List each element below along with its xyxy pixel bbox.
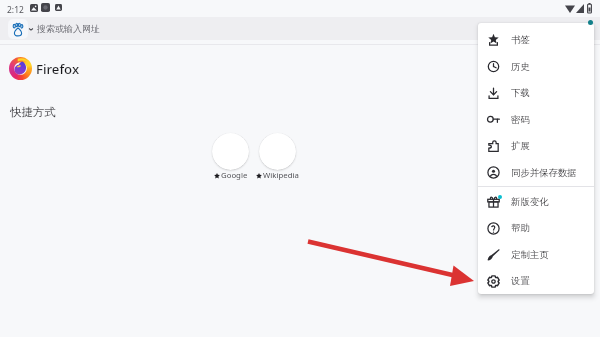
button[interactable]: 新版变化 xyxy=(478,188,594,215)
button[interactable]: 下载 xyxy=(478,80,594,106)
button[interactable]: 帮助 xyxy=(478,215,594,241)
button[interactable]: Firefox xyxy=(9,57,80,80)
button[interactable]: 密码 xyxy=(478,106,594,133)
staticText: Google xyxy=(221,170,248,181)
staticText: 新版变化 xyxy=(511,196,549,208)
button[interactable]: 同步并保存数据 xyxy=(478,159,594,186)
staticText: 历史 xyxy=(511,61,530,73)
staticText: Firefox xyxy=(36,60,80,78)
staticText: 设置 xyxy=(511,275,530,287)
staticText: 密码 xyxy=(511,114,530,126)
button[interactable]: 书签 xyxy=(478,27,594,53)
staticText: 帮助 xyxy=(511,222,530,234)
staticText: 下载 xyxy=(511,87,530,99)
button[interactable]: 设置 xyxy=(478,268,594,294)
staticText: 同步并保存数据 xyxy=(511,167,577,179)
button[interactable]: Wikipedia xyxy=(259,133,296,185)
button[interactable]: 搜索或输入网址 xyxy=(0,17,600,40)
staticText: 快捷方式 xyxy=(10,105,56,119)
other: Pointer xyxy=(0,0,600,337)
staticText: 定制主页 xyxy=(511,249,549,261)
staticText: 扩展 xyxy=(511,140,530,152)
button[interactable]: 扩展 xyxy=(478,133,594,159)
staticText: 搜索或输入网址 xyxy=(37,23,100,34)
button[interactable]: 定制主页 xyxy=(478,241,594,268)
staticText: 书签 xyxy=(511,34,530,46)
button[interactable]: 历史 xyxy=(478,53,594,80)
button[interactable]: Google xyxy=(212,133,249,185)
staticText: 2:12 xyxy=(7,4,24,16)
staticText: Wikipedia xyxy=(263,170,299,181)
